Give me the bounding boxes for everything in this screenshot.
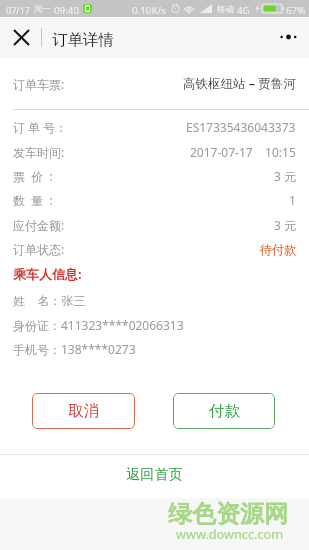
staticText: 返回首页: [126, 465, 183, 483]
staticText: 待付款: [260, 242, 296, 257]
staticText: 高铁枢纽站 – 贾鲁河: [183, 75, 296, 92]
staticText: 订单详情: [52, 30, 114, 50]
staticText: 2017-07-17 10:15: [190, 144, 296, 160]
button[interactable]: More options: [269, 17, 309, 57]
staticText: www.downcc.com: [176, 525, 284, 542]
staticText: 发车时间:: [13, 144, 65, 160]
staticText: ES17335436043373: [186, 119, 296, 135]
button[interactable]: Close: [1, 17, 41, 57]
staticText: 取消: [68, 401, 99, 421]
staticText: 1: [289, 192, 296, 208]
button[interactable]: 付款: [173, 393, 275, 429]
staticText: 绿色资源网: [168, 499, 288, 529]
staticText: 身份证：411323****02066313: [13, 317, 184, 333]
staticText: 乘车人信息:: [13, 265, 82, 283]
staticText: 订单车票:: [13, 76, 65, 92]
button[interactable]: 取消: [32, 393, 135, 429]
staticText: 67%: [286, 4, 306, 17]
staticText: 应付金额:: [13, 217, 65, 233]
staticText: 票 价 :: [13, 168, 53, 184]
staticText: 付款: [209, 401, 240, 421]
staticText: 周一: [34, 4, 51, 15]
staticText: 数 量 :: [13, 192, 53, 208]
staticText: 07/17: [6, 4, 30, 16]
staticText: 3 元: [274, 217, 296, 233]
staticText: 09:40: [54, 4, 80, 17]
staticText: 3 元: [274, 168, 296, 184]
staticText: 姓 名：张三: [13, 292, 86, 308]
staticText: 移动: [217, 4, 234, 15]
staticText: 4G: [237, 4, 250, 17]
staticText: 手机号：138****0273: [13, 341, 136, 357]
staticText: 0.10K/s: [132, 4, 166, 17]
button[interactable]: 返回首页: [118, 462, 191, 486]
staticText: 订 单 号：: [13, 119, 68, 135]
staticText: 订单状态:: [13, 241, 65, 257]
